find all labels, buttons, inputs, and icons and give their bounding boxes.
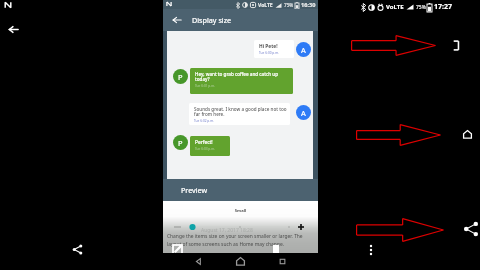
button[interactable]: Back (172, 15, 182, 25)
staticText: 17:27 (434, 2, 452, 12)
staticText: Tue 6:00 p.m. (259, 51, 280, 55)
button[interactable]: Back (192, 255, 205, 268)
staticText: Sounds great. I know a good place not to… (194, 106, 287, 118)
staticText: Display size (192, 15, 232, 25)
button[interactable]: Back (8, 24, 19, 35)
staticText: P (178, 138, 183, 148)
button[interactable]: More options (368, 244, 374, 256)
staticText: 75% (284, 2, 294, 8)
button[interactable]: Recents (276, 255, 289, 268)
button[interactable]: Recents (453, 40, 460, 51)
staticText: 75% (416, 4, 426, 11)
staticText: A (301, 108, 306, 118)
staticText: Tue 6:03 p.m. (195, 147, 216, 151)
staticText: P (178, 72, 183, 82)
button[interactable]: Share (463, 221, 479, 237)
staticText: Tue 6:02 p.m. (194, 119, 215, 123)
staticText: VoLTE (386, 3, 404, 11)
button[interactable]: Home (461, 128, 474, 141)
button[interactable]: Home (234, 255, 247, 268)
button[interactable]: Perfect! (190, 136, 230, 156)
staticText: August 17, 2017 18:28 (201, 227, 253, 234)
staticText: Perfect! (195, 139, 213, 146)
button[interactable]: Share (72, 244, 83, 255)
button[interactable]: Hey, want to grab coffee and catch up to… (190, 68, 293, 94)
staticText: 16:30 (301, 1, 316, 9)
staticText: Preview (181, 185, 208, 195)
staticText: VoLTE (258, 2, 273, 9)
staticText: Small (163, 208, 318, 214)
button[interactable]: Sounds great. I know a good place not to… (189, 103, 290, 125)
staticText: Tue 6:01 p.m. (195, 84, 216, 88)
staticText: Hi Pete! (259, 43, 278, 50)
staticText: Hey, want to grab coffee and catch up to… (195, 71, 279, 83)
staticText: Change the items size on your screen sma… (167, 233, 303, 247)
staticText: A (301, 45, 306, 55)
button[interactable]: Hi Pete! (254, 40, 294, 58)
